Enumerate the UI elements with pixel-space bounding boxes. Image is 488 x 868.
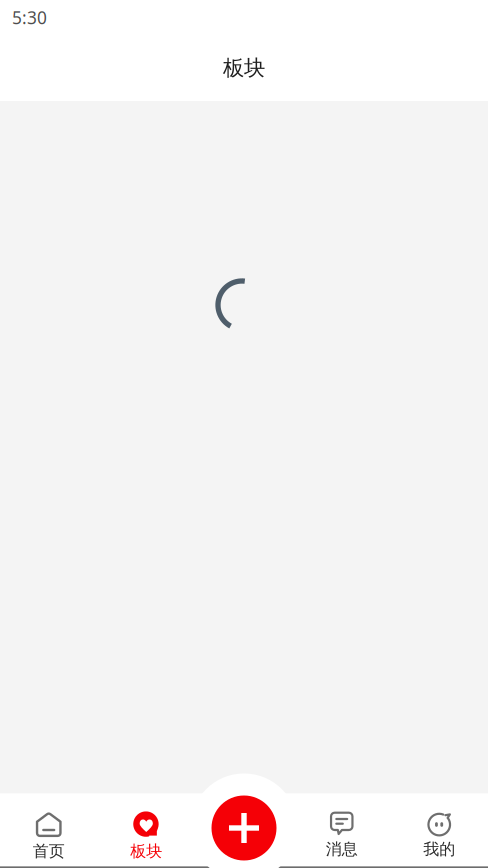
button[interactable]: 我的 bbox=[390, 793, 488, 866]
staticText: 5:30 bbox=[12, 6, 47, 29]
button[interactable]: 消息 bbox=[293, 793, 390, 866]
button[interactable]: 新建 bbox=[211, 795, 276, 860]
staticText: 板块 bbox=[130, 841, 162, 861]
staticText: 我的 bbox=[423, 839, 455, 859]
staticText: 首页 bbox=[33, 841, 65, 861]
button[interactable]: 板块 bbox=[97, 793, 195, 866]
staticText: 消息 bbox=[326, 839, 358, 859]
button[interactable]: 首页 bbox=[0, 793, 97, 866]
staticText: 板块 bbox=[223, 55, 265, 81]
